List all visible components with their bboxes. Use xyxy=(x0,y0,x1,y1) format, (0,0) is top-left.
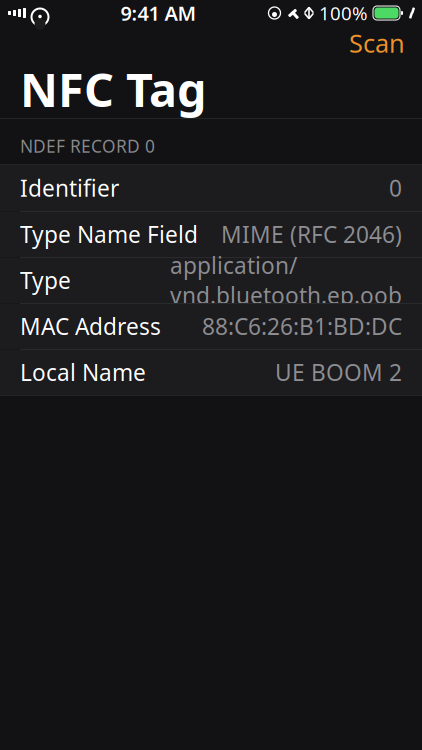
staticText: Type Name Field xyxy=(20,219,198,249)
staticText: NFC Tag xyxy=(20,58,206,120)
staticText: NDEF RECORD 0 xyxy=(20,134,155,157)
staticText: 88:C6:26:B1:BD:DC xyxy=(202,311,402,341)
staticText: UE BOOM 2 xyxy=(275,357,402,387)
staticText: application/vnd.bluetooth.ep.oob xyxy=(170,250,402,310)
staticText: MAC Address xyxy=(20,311,161,341)
staticText: 0 xyxy=(389,173,402,203)
staticText: Identifier xyxy=(20,173,119,203)
button[interactable]: MAC Address xyxy=(0,303,422,349)
staticText: Local Name xyxy=(20,357,146,387)
staticText: MIME (RFC 2046) xyxy=(221,219,402,249)
button[interactable]: Identifier xyxy=(0,165,422,211)
staticText: Type xyxy=(20,265,71,295)
staticText: Scan xyxy=(349,26,405,60)
staticText: 9:41 AM xyxy=(120,0,196,26)
staticText: 100% xyxy=(319,1,368,25)
button[interactable]: Scan xyxy=(335,20,419,66)
button[interactable]: Type xyxy=(0,257,422,303)
button[interactable]: Type Name Field xyxy=(0,211,422,257)
button[interactable]: Local Name xyxy=(0,349,422,395)
